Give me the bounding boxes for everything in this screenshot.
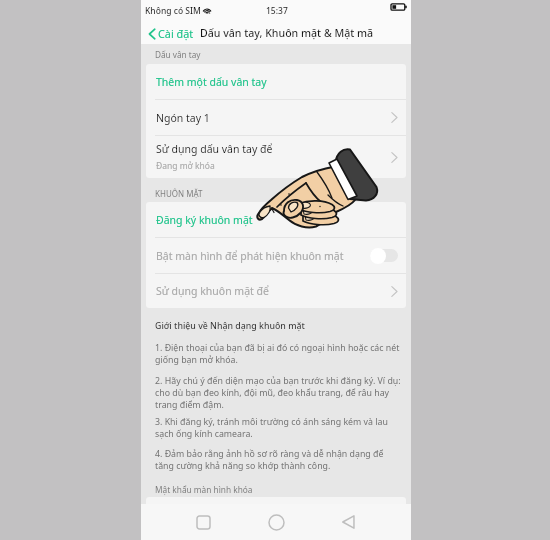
button[interactable]: Back to Cài đặt <box>141 26 198 41</box>
button[interactable]: Đăng ký khuôn mặt <box>146 202 406 237</box>
staticText: Ngón tay 1 <box>156 111 210 125</box>
staticText: Sử dụng dấu vân tay để <box>156 142 273 156</box>
staticText: Thêm một dấu vân tay <box>156 75 267 89</box>
button[interactable]: Recent apps <box>188 507 218 537</box>
staticText: Không có SIM <box>145 5 201 17</box>
staticText: 2. Hãy chú ý đến diện mạo của bạn trước … <box>155 375 402 411</box>
button[interactable]: Thêm một dấu vân tay <box>146 64 406 99</box>
button[interactable]: Sử dụng dấu vân tay để <box>146 136 406 178</box>
staticText: Giới thiệu về Nhận dạng khuôn mặt <box>155 320 305 332</box>
button[interactable]: Ngón tay 1 <box>146 100 406 135</box>
staticText: 4. Đảm bảo rằng ảnh hồ sơ rõ ràng và dễ … <box>155 448 402 472</box>
staticText: 15:37 <box>266 5 288 17</box>
button[interactable]: Bật màn hình để phát hiện khuôn mặt <box>146 238 406 273</box>
staticText: Cài đặt <box>158 26 194 41</box>
button[interactable]: Home <box>261 507 291 537</box>
staticText: Dấu vân tay <box>155 49 201 60</box>
staticText: Sử dụng khuôn mặt để <box>156 284 269 298</box>
staticText: Đang mở khóa <box>156 160 215 172</box>
staticText: Bật màn hình để phát hiện khuôn mặt <box>156 249 344 263</box>
button[interactable]: Back <box>333 507 363 537</box>
staticText: Dấu vân tay, Khuôn mặt & Mật mã <box>200 26 374 40</box>
button[interactable]: Sử dụng khuôn mặt để <box>146 274 406 308</box>
staticText: 3. Khi đăng ký, tránh môi trường có ánh … <box>155 416 402 440</box>
staticText: Đăng ký khuôn mặt <box>156 213 253 227</box>
staticText: Mật khẩu màn hình khóa <box>155 484 253 495</box>
staticText: 1. Điện thoại của bạn đã bị ai đó có ngo… <box>155 342 402 366</box>
staticText: KHUÔN MẶT <box>155 188 203 199</box>
